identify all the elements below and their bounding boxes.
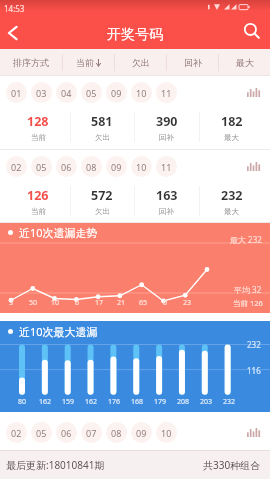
staticText: 6 <box>75 298 80 308</box>
button[interactable]: 回补 <box>167 49 218 76</box>
button[interactable]: 排序方式 <box>0 49 62 76</box>
button[interactable]: Back <box>0 16 26 49</box>
button[interactable]: Statistics chart <box>242 81 264 103</box>
staticText: 65 <box>139 298 148 308</box>
staticText: 当前 <box>31 133 46 142</box>
staticText: 欠出 <box>95 207 110 216</box>
staticText: 平均 32 <box>234 284 262 295</box>
staticText: 排序方式 <box>13 57 49 68</box>
staticText: 116 <box>247 365 261 376</box>
staticText: 最大 <box>224 207 239 216</box>
button[interactable]: 欠出 <box>115 49 166 76</box>
staticText: 欠出 <box>95 133 110 142</box>
staticText: 最大 232 <box>230 234 262 245</box>
staticText: 159 <box>62 397 75 407</box>
staticText: 10 <box>136 87 147 99</box>
button[interactable]: Statistics chart <box>242 422 264 443</box>
staticText: 168 <box>131 397 144 407</box>
staticText: 128 <box>27 113 49 130</box>
staticText: 0 <box>163 298 168 308</box>
staticText: 01 <box>11 87 22 99</box>
staticText: 共330种组合 <box>203 458 261 472</box>
staticText: 04 <box>61 87 72 99</box>
button[interactable]: Search <box>238 16 270 49</box>
staticText: 当前 <box>76 57 94 68</box>
staticText: 208 <box>177 397 190 407</box>
staticText: 09 <box>111 87 122 99</box>
staticText: 06 <box>61 161 72 173</box>
staticText: 最大 <box>236 57 254 68</box>
staticText: 06 <box>61 427 72 439</box>
staticText: 02 <box>11 161 22 173</box>
staticText: 50 <box>29 298 38 308</box>
staticText: 17 <box>95 298 104 308</box>
staticText: 14:53 <box>4 3 25 14</box>
staticText: 08 <box>86 161 97 173</box>
staticText: 10 <box>136 161 147 173</box>
staticText: 09 <box>136 427 147 439</box>
staticText: 126 <box>27 187 49 204</box>
staticText: 11 <box>161 87 172 99</box>
staticText: 203 <box>200 397 213 407</box>
button[interactable]: Statistics chart <box>242 155 264 177</box>
staticText: 23 <box>183 298 192 308</box>
staticText: 581 <box>91 113 113 130</box>
staticText: 欠出 <box>132 57 150 68</box>
staticText: 162 <box>85 397 98 407</box>
staticText: 05 <box>36 161 47 173</box>
staticText: 182 <box>221 113 243 130</box>
staticText: 近10次遗漏走势 <box>19 225 98 240</box>
staticText: 3 <box>9 298 14 308</box>
staticText: 232 <box>223 397 236 407</box>
staticText: 07 <box>86 427 97 439</box>
staticText: 10 <box>161 427 172 439</box>
staticText: 最后更新:18010841期 <box>6 458 105 472</box>
staticText: 当前 126 <box>233 298 263 308</box>
staticText: 近10次最大遗漏 <box>19 324 98 339</box>
button[interactable]: 最大 <box>219 49 270 76</box>
staticText: 232 <box>221 187 243 204</box>
staticText: 09 <box>111 161 122 173</box>
staticText: 当前 <box>31 207 46 216</box>
staticText: 179 <box>154 397 167 407</box>
staticText: 回补 <box>184 57 202 68</box>
staticText: 回补 <box>159 133 174 142</box>
staticText: 163 <box>156 187 178 204</box>
staticText: 80 <box>18 397 27 407</box>
staticText: 开奖号码 <box>107 26 163 44</box>
staticText: 390 <box>156 113 178 130</box>
staticText: 08 <box>111 427 122 439</box>
staticText: 21 <box>117 298 126 308</box>
staticText: 176 <box>108 397 121 407</box>
staticText: 最大 <box>224 133 239 142</box>
staticText: 03 <box>36 87 47 99</box>
staticText: 02 <box>11 427 22 439</box>
staticText: 05 <box>36 427 47 439</box>
staticText: 回补 <box>159 207 174 216</box>
staticText: 572 <box>91 187 113 204</box>
button[interactable]: 当前 <box>63 49 114 76</box>
staticText: 10 <box>51 298 60 308</box>
staticText: 162 <box>39 397 52 407</box>
staticText: 11 <box>161 161 172 173</box>
staticText: 05 <box>86 87 97 99</box>
staticText: 232 <box>247 339 261 350</box>
